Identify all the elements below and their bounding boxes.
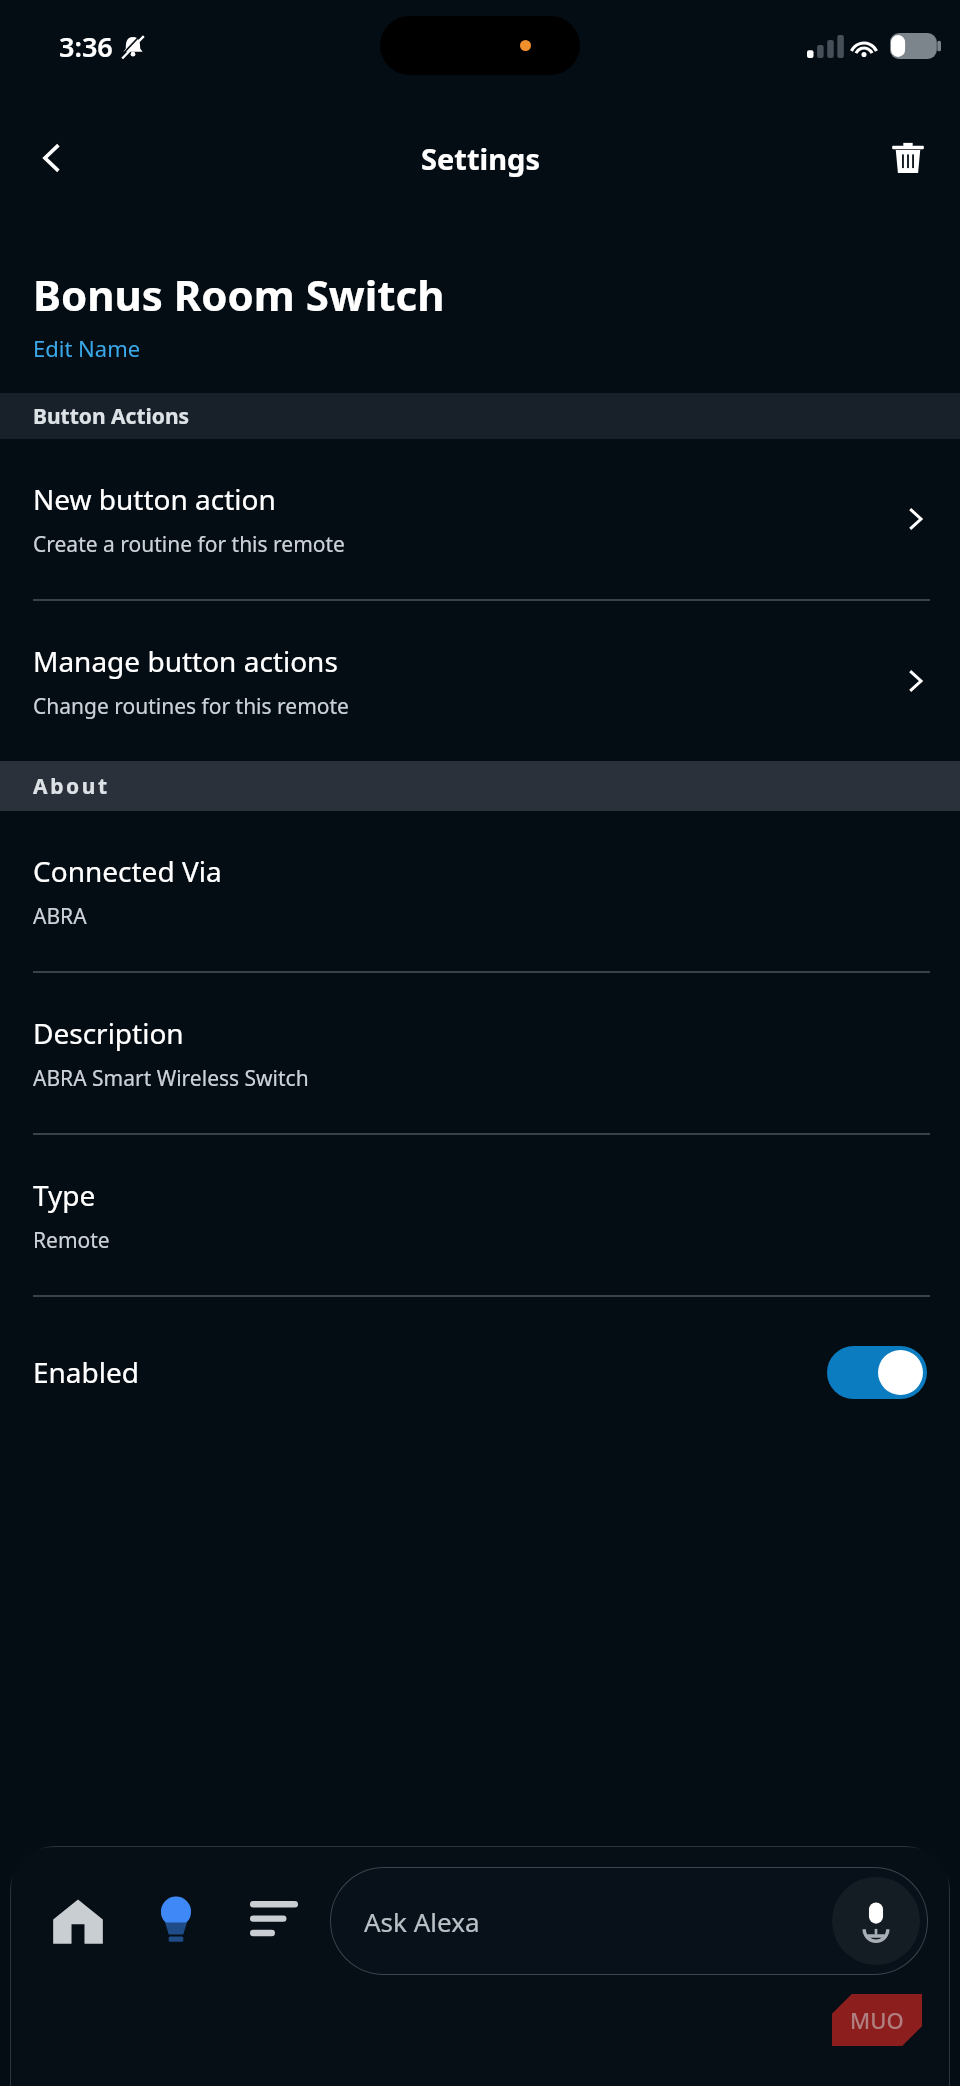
staticText: Edit Name	[33, 333, 141, 363]
button[interactable]: Type	[0, 1135, 960, 1295]
button[interactable]: More	[232, 1879, 316, 1963]
button[interactable]: Description	[0, 973, 960, 1133]
button[interactable]: Ask Alexa	[330, 1867, 928, 1975]
button[interactable]: Devices	[134, 1879, 218, 1963]
button[interactable]: Edit Name	[33, 333, 141, 363]
staticText: MUO	[850, 2005, 904, 2035]
button[interactable]: Voice input	[832, 1877, 920, 1965]
staticText: About	[33, 772, 110, 801]
staticText: ABRA Smart Wireless Switch	[33, 1064, 309, 1093]
staticText: ABRA	[33, 902, 87, 931]
button[interactable]: Connected Via	[0, 811, 960, 971]
button[interactable]: New button action	[0, 439, 960, 599]
button[interactable]: Enabled	[0, 1297, 960, 1447]
staticText: Ask Alexa	[364, 1904, 480, 1939]
staticText: Manage button actions	[33, 642, 338, 680]
staticText: Settings	[421, 139, 540, 178]
staticText: Description	[33, 1014, 184, 1052]
staticText: Bonus Room Switch	[33, 266, 445, 323]
staticText: New button action	[33, 480, 276, 518]
staticText: Button Actions	[33, 402, 190, 431]
button[interactable]: Back	[16, 122, 88, 194]
button[interactable]: Manage button actions	[0, 601, 960, 761]
button[interactable]: Delete	[872, 122, 944, 194]
staticText: Change routines for this remote	[33, 692, 349, 721]
staticText: 3:36	[59, 28, 113, 65]
button[interactable]: Home	[36, 1879, 120, 1963]
staticText: Type	[33, 1176, 96, 1214]
staticText: Remote	[33, 1226, 110, 1255]
staticText: Enabled	[33, 1353, 827, 1391]
staticText: Connected Via	[33, 852, 222, 890]
button[interactable]: Enabled toggle	[827, 1346, 927, 1399]
staticText: Create a routine for this remote	[33, 530, 345, 559]
